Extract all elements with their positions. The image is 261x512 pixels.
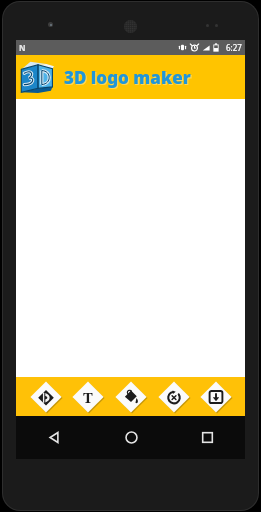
button[interactable]: Recent apps	[169, 416, 245, 459]
button[interactable]: Save	[200, 381, 231, 412]
staticText: N	[19, 42, 26, 53]
staticText: 3D logo maker	[64, 66, 191, 89]
staticText: T	[73, 382, 103, 412]
button[interactable]: Fill colour	[115, 381, 146, 412]
button[interactable]: Back	[16, 416, 93, 459]
staticText: 6:27	[226, 42, 242, 53]
staticText: 3D logo maker	[65, 67, 192, 90]
button[interactable]: Shape	[30, 381, 61, 412]
button[interactable]: Text	[72, 381, 103, 412]
button[interactable]: Reset	[158, 381, 189, 412]
button[interactable]: Home	[93, 416, 169, 459]
